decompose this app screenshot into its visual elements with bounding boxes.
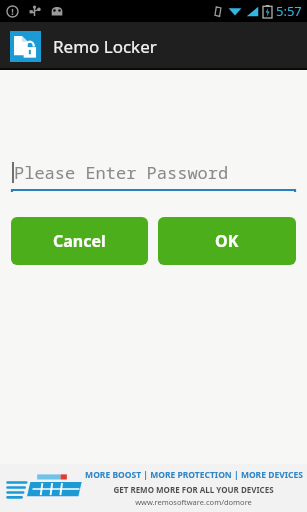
staticText: Cancel <box>53 230 106 252</box>
staticText: GET REMO MORE FOR ALL YOUR DEVICES <box>113 484 274 495</box>
staticText: Remo Locker <box>53 35 157 58</box>
button[interactable]: OK <box>158 217 296 265</box>
staticText: 5:57 <box>276 2 302 20</box>
staticText: Please Enter Password <box>14 161 229 184</box>
button[interactable]: MORE BOOST | MORE PROTECTION | MORE DEVI… <box>0 464 307 512</box>
staticText: OK <box>215 230 239 252</box>
staticText: MORE BOOST | MORE PROTECTION | MORE DEVI… <box>85 469 303 481</box>
button[interactable]: Cancel <box>11 217 148 265</box>
staticText: www.remosoftware.com/domore <box>135 497 252 507</box>
